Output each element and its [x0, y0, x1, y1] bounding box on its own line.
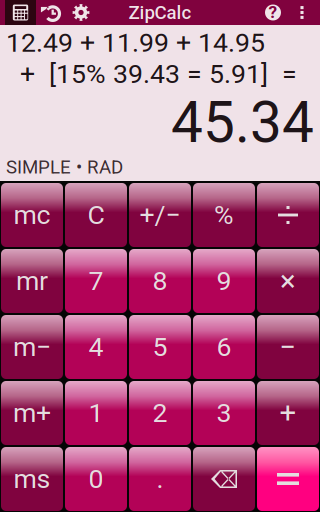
staticText: ? [268, 2, 277, 22]
staticText: 2 [152, 397, 167, 429]
staticText: 0 [88, 463, 103, 495]
button[interactable]: 7 [65, 249, 127, 313]
button[interactable]: Settings [66, 0, 96, 25]
staticText: mc [13, 199, 50, 231]
button[interactable]: 2 [129, 381, 191, 445]
staticText: 9 [216, 265, 231, 297]
button[interactable]: mc [1, 183, 63, 247]
staticText: 12.49 + 11.99 + 14.95 [6, 27, 265, 58]
staticText: mr [16, 265, 48, 297]
staticText: +/− [139, 199, 180, 231]
button[interactable]: C [65, 183, 127, 247]
button[interactable]: 3 [193, 381, 255, 445]
staticText: ms [13, 463, 50, 495]
staticText: − [279, 330, 296, 364]
button[interactable]: 8 [129, 249, 191, 313]
button[interactable]: m− [1, 315, 63, 379]
staticText: % [214, 199, 234, 231]
staticText: + [279, 396, 296, 430]
button[interactable]: 0 [65, 447, 127, 511]
button[interactable]: 1 [65, 381, 127, 445]
button[interactable]: 6 [193, 315, 255, 379]
button[interactable]: 5 [129, 315, 191, 379]
button[interactable]: − [257, 315, 319, 379]
button[interactable]: × [257, 249, 319, 313]
staticText: m− [13, 331, 51, 363]
staticText: C [87, 199, 104, 231]
staticText: 45.34 [171, 89, 314, 156]
staticText: 7 [88, 265, 103, 297]
staticText: . [156, 463, 163, 495]
button[interactable]: More options [289, 0, 315, 25]
staticText: 3 [216, 397, 231, 429]
button[interactable]: + [257, 381, 319, 445]
button[interactable]: 9 [193, 249, 255, 313]
staticText: ZipCalc [128, 2, 191, 23]
button[interactable]: % [193, 183, 255, 247]
button[interactable]: Divide [257, 183, 319, 247]
button[interactable]: Backspace [193, 447, 255, 511]
staticText: 6 [216, 331, 231, 363]
button[interactable]: . [129, 447, 191, 511]
staticText: + [15% 39.43 = 5.91] = [20, 58, 297, 90]
button[interactable]: mr [1, 249, 63, 313]
button[interactable]: Calculator [5, 0, 36, 25]
button[interactable]: m+ [1, 381, 63, 445]
staticText: 4 [88, 331, 103, 363]
button[interactable]: +/− [129, 183, 191, 247]
staticText: 8 [152, 265, 167, 297]
staticText: m+ [13, 397, 51, 429]
button[interactable]: History [36, 0, 66, 25]
button[interactable]: Equals [257, 447, 319, 511]
staticText: SIMPLE • RAD [6, 156, 123, 178]
button[interactable]: 4 [65, 315, 127, 379]
button[interactable]: ms [1, 447, 63, 511]
staticText: × [280, 264, 296, 298]
staticText: 5 [152, 331, 167, 363]
staticText: 1 [88, 397, 103, 429]
button[interactable]: Help [257, 0, 289, 25]
